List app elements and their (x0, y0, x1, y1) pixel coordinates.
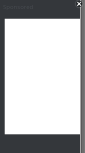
staticText: Sponsored (3, 3, 34, 11)
button[interactable]: Close (74, 0, 83, 9)
